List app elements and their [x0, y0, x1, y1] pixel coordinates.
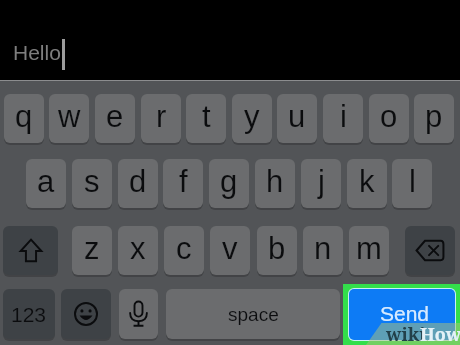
button[interactable]: j [301, 159, 341, 208]
staticText: t [202, 99, 211, 134]
button[interactable]: t [186, 94, 226, 143]
button[interactable]: u [277, 94, 317, 143]
button[interactable]: 123 [3, 289, 55, 339]
staticText: n [314, 231, 332, 266]
button[interactable]: Send [348, 288, 456, 341]
staticText: d [129, 164, 147, 199]
staticText: z [84, 231, 100, 266]
button[interactable]: a [26, 159, 66, 208]
button[interactable]: r [141, 94, 181, 143]
button[interactable]: z [72, 226, 112, 275]
staticText: b [268, 231, 286, 266]
staticText: i [340, 99, 347, 134]
staticText: a [37, 164, 55, 199]
staticText: h [266, 164, 284, 199]
staticText: g [220, 164, 238, 199]
button[interactable]: o [369, 94, 409, 143]
staticText: How [420, 322, 460, 345]
button[interactable]: Shift [3, 226, 58, 275]
button[interactable]: d [118, 159, 158, 208]
button[interactable]: w [49, 94, 89, 143]
button[interactable]: m [349, 226, 389, 275]
button[interactable]: Backspace [405, 226, 455, 275]
staticText: y [244, 99, 260, 134]
staticText: v [222, 231, 238, 266]
button[interactable]: q [4, 94, 44, 143]
button[interactable]: g [209, 159, 249, 208]
staticText: w [58, 99, 81, 134]
button[interactable]: Voice input [119, 289, 158, 339]
staticText: r [156, 99, 167, 134]
button[interactable]: Emoji [61, 289, 111, 339]
button[interactable]: space [166, 289, 340, 339]
button[interactable]: e [95, 94, 135, 143]
button[interactable]: k [347, 159, 387, 208]
button[interactable]: x [118, 226, 158, 275]
staticText: x [130, 231, 146, 266]
staticText: k [359, 164, 375, 199]
button[interactable]: f [163, 159, 203, 208]
staticText: q [15, 99, 33, 134]
staticText: f [179, 164, 188, 199]
staticText: j [318, 164, 325, 199]
staticText: e [106, 99, 124, 134]
button[interactable]: h [255, 159, 295, 208]
staticText: o [380, 99, 398, 134]
staticText: Hello [13, 41, 61, 64]
button[interactable]: i [323, 94, 363, 143]
button[interactable]: l [392, 159, 432, 208]
button[interactable]: n [303, 226, 343, 275]
staticText: Send [380, 302, 430, 325]
staticText: p [425, 99, 443, 134]
button[interactable]: b [257, 226, 297, 275]
button[interactable]: v [210, 226, 250, 275]
staticText: c [176, 231, 192, 266]
staticText: wiki [386, 322, 426, 345]
button[interactable]: c [164, 226, 204, 275]
staticText: 123 [11, 303, 47, 326]
staticText: l [409, 164, 416, 199]
staticText: space [228, 304, 279, 325]
staticText: m [356, 231, 382, 266]
button[interactable]: p [414, 94, 454, 143]
button[interactable]: s [72, 159, 112, 208]
staticText: s [84, 164, 100, 199]
button[interactable]: y [232, 94, 272, 143]
staticText: u [288, 99, 306, 134]
